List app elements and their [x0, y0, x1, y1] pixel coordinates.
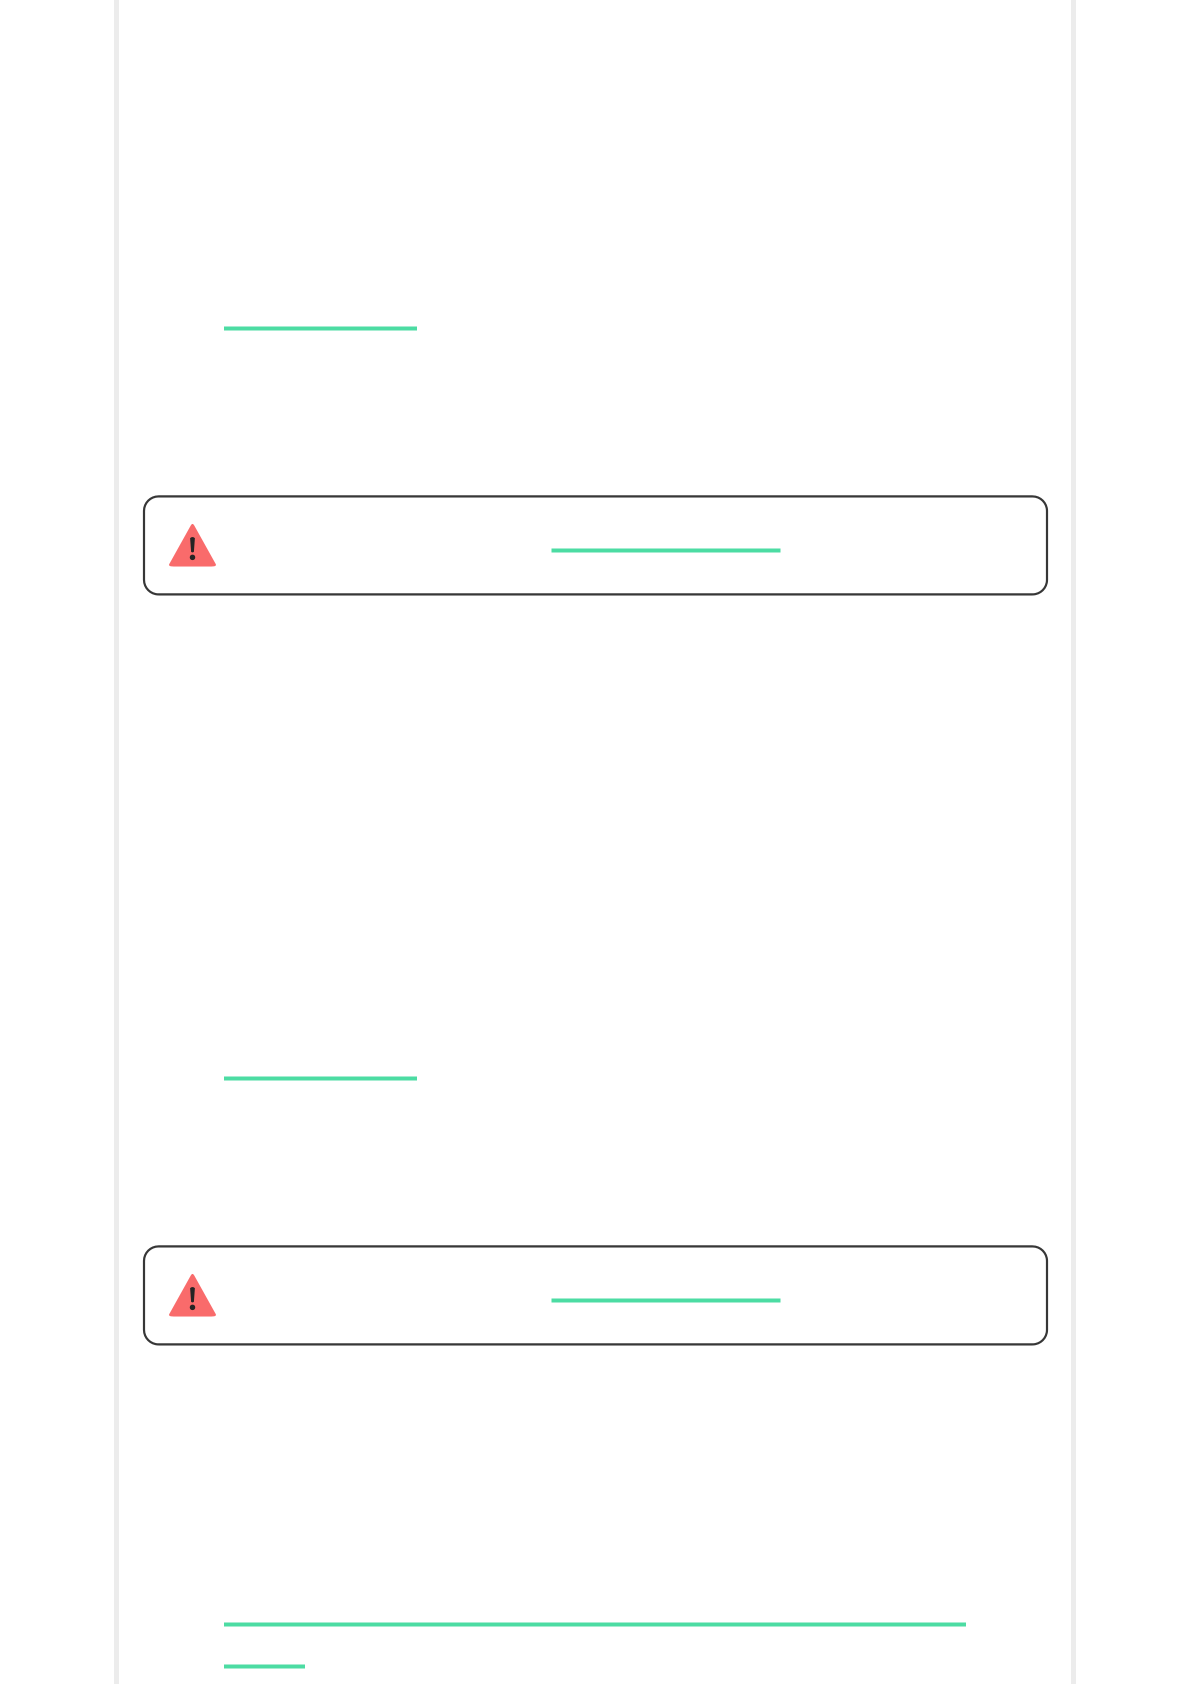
staticText: Read the full documentation for more inf… — [224, 1598, 688, 1624]
button[interactable]: Read the full documentation for more inf… — [224, 1600, 966, 1628]
button[interactable]: Review account settings — [551, 526, 780, 554]
button[interactable]: Terms of Service — [224, 304, 417, 332]
staticText: Review account settings — [551, 1274, 774, 1300]
button[interactable]: Learn more — [224, 1642, 305, 1670]
staticText: Learn more — [224, 1626, 276, 1679]
staticText: Review account settings — [551, 524, 774, 550]
button[interactable]: Review account settings — [551, 1276, 780, 1304]
button[interactable]: Privacy Policy — [224, 1054, 417, 1082]
staticText: Terms of Service — [224, 302, 377, 328]
staticText: Privacy Policy — [224, 1052, 349, 1078]
